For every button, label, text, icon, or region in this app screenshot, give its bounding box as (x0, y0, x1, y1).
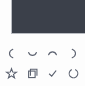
button[interactable]: Done (43, 64, 62, 83)
button[interactable]: Copy (23, 64, 42, 83)
button[interactable]: Left bracket (2, 44, 21, 63)
button[interactable]: Favorite (2, 64, 21, 83)
button[interactable]: Power (64, 64, 83, 83)
button[interactable]: Preview panel (11, 0, 85, 34)
button[interactable]: Curve up (43, 44, 62, 63)
button[interactable]: Right bracket (64, 44, 83, 63)
button[interactable]: Curve down (23, 44, 42, 63)
